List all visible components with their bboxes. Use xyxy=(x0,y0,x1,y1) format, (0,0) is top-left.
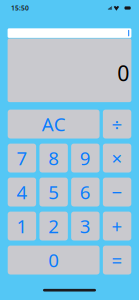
staticText: 4 xyxy=(16,180,27,204)
button[interactable]: 9 xyxy=(71,144,100,172)
staticText: 0 xyxy=(117,59,129,87)
staticText: × xyxy=(112,146,123,170)
staticText: 6 xyxy=(80,180,91,204)
button[interactable]: − xyxy=(103,178,131,206)
staticText: ÷ xyxy=(112,112,123,136)
button[interactable]: 4 xyxy=(8,178,36,206)
staticText: 8 xyxy=(48,146,59,170)
button[interactable]: ÷ xyxy=(103,110,131,138)
button[interactable]: 0 xyxy=(8,246,99,274)
button[interactable]: × xyxy=(103,144,131,172)
staticText: 7 xyxy=(16,146,27,170)
button[interactable]: 2 xyxy=(39,212,68,240)
button[interactable]: 7 xyxy=(8,144,36,172)
staticText: + xyxy=(112,214,123,238)
button[interactable]: 5 xyxy=(39,178,68,206)
staticText: 2 xyxy=(48,214,59,238)
button[interactable]: 1 xyxy=(8,212,36,240)
staticText: AC xyxy=(42,112,66,136)
staticText: 1 xyxy=(16,214,27,238)
staticText: − xyxy=(112,180,123,204)
staticText: 15:50 xyxy=(11,4,29,12)
button[interactable]: + xyxy=(103,212,131,240)
staticText: 3 xyxy=(80,214,91,238)
staticText: 5 xyxy=(48,180,59,204)
button[interactable]: 8 xyxy=(39,144,68,172)
button[interactable]: 6 xyxy=(71,178,100,206)
staticText: = xyxy=(112,248,123,272)
staticText: 9 xyxy=(80,146,91,170)
button[interactable]: 3 xyxy=(71,212,100,240)
button[interactable]: = xyxy=(103,246,131,274)
staticText: 0 xyxy=(48,248,59,272)
button[interactable]: AC xyxy=(8,110,99,138)
